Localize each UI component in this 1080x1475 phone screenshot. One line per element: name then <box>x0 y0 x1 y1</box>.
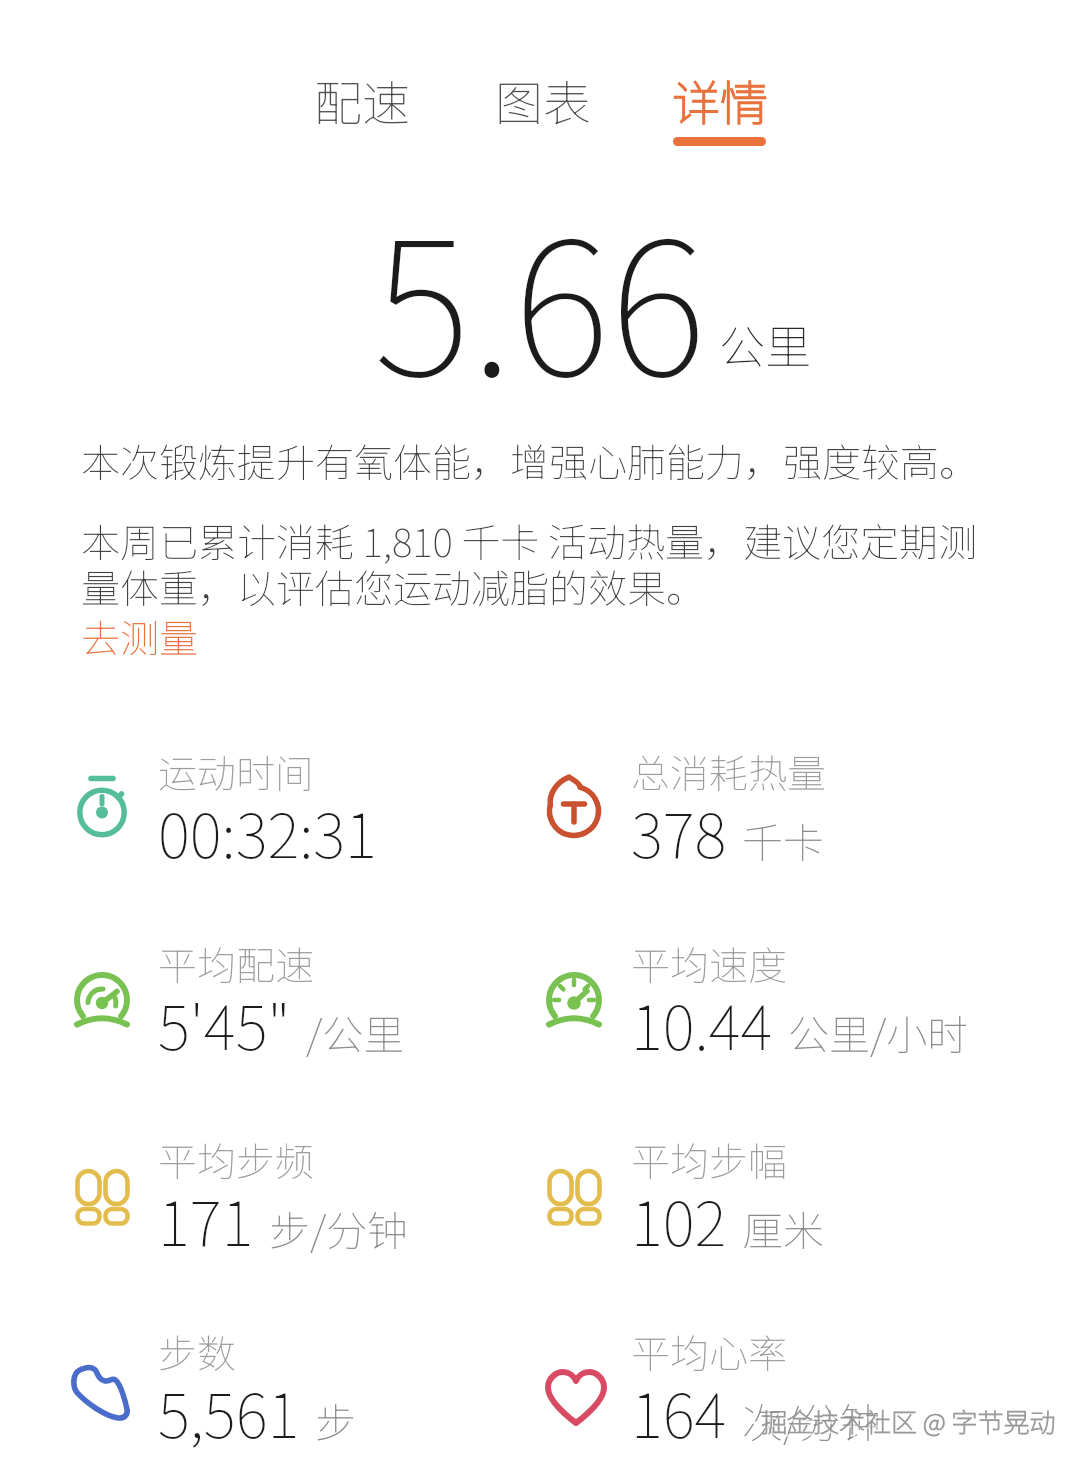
staticText: 千卡 <box>742 810 824 869</box>
staticText: 公里/小时 <box>788 1002 969 1061</box>
staticText: 平均步幅 <box>631 1131 788 1187</box>
button[interactable]: 去测量 <box>75 602 193 658</box>
staticText: 本次锻炼提升有氧体能，增强心肺能力，强度较高。 <box>81 432 979 488</box>
staticText: 平均速度 <box>631 935 788 991</box>
staticText: 00:32:31 <box>158 787 377 875</box>
button[interactable]: 图表 <box>473 60 613 140</box>
staticText: 次/分钟 <box>742 1390 882 1449</box>
staticText: 5,561 <box>158 1367 300 1455</box>
staticText: 5'45" <box>158 979 291 1067</box>
staticText: 步/分钟 <box>269 1198 409 1257</box>
staticText: 步 <box>315 1390 356 1449</box>
staticText: 步数 <box>158 1323 237 1379</box>
staticText: 5.66 <box>374 161 706 429</box>
staticText: 102 <box>631 1175 727 1263</box>
staticText: 本周已累计消耗 1,810 千卡 活动热量，建议您定期测 量体重，以评估您运动减… <box>81 512 978 614</box>
button[interactable]: 配速 <box>292 60 432 140</box>
staticText: 详情 <box>672 65 769 135</box>
staticText: 378 <box>631 787 727 875</box>
staticText: 平均心率 <box>631 1323 788 1379</box>
staticText: 图表 <box>495 65 592 135</box>
staticText: 171 <box>158 1175 254 1263</box>
staticText: 10.44 <box>631 979 773 1067</box>
staticText: 厘米 <box>742 1198 824 1257</box>
staticText: 164 <box>631 1367 727 1455</box>
staticText: 总消耗热量 <box>631 743 827 799</box>
staticText: 掘金技术社区 @ 字节晃动 <box>761 1402 1056 1440</box>
staticText: 运动时间 <box>158 743 315 799</box>
staticText: 平均步频 <box>158 1131 315 1187</box>
staticText: 公里 <box>719 311 811 378</box>
button[interactable]: 详情 <box>650 60 790 140</box>
staticText: 掘金技术社区 @ 字节晃动 <box>763 1404 1058 1442</box>
staticText: /公里 <box>306 1002 405 1061</box>
staticText: 配速 <box>314 65 411 135</box>
staticText: 平均配速 <box>158 935 315 991</box>
staticText: 去测量 <box>81 608 199 664</box>
